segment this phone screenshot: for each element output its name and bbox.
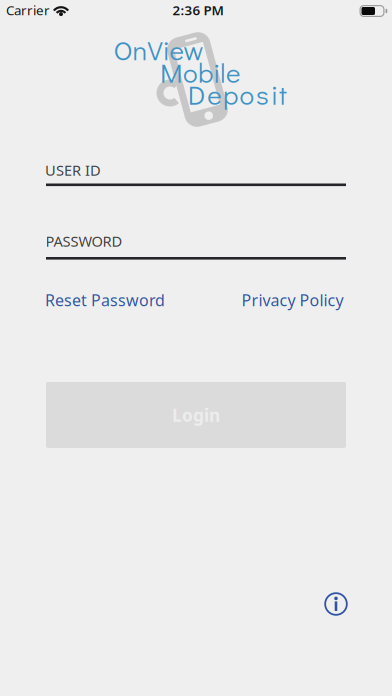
staticText: Deposit — [188, 76, 287, 112]
staticText: Carrier — [6, 1, 50, 19]
staticText: Mobile — [160, 54, 240, 90]
button[interactable]: Info — [321, 589, 351, 619]
staticText: USER ID — [45, 160, 101, 180]
staticText: 2:36 PM — [172, 1, 223, 19]
staticText: PASSWORD — [45, 231, 122, 251]
staticText: OnView — [113, 31, 203, 67]
staticText: Login — [172, 403, 220, 426]
staticText: Privacy Policy — [241, 289, 343, 311]
button[interactable]: Privacy Policy — [241, 289, 343, 311]
staticText: Reset Password — [45, 289, 165, 311]
button[interactable]: Reset Password — [45, 289, 165, 311]
